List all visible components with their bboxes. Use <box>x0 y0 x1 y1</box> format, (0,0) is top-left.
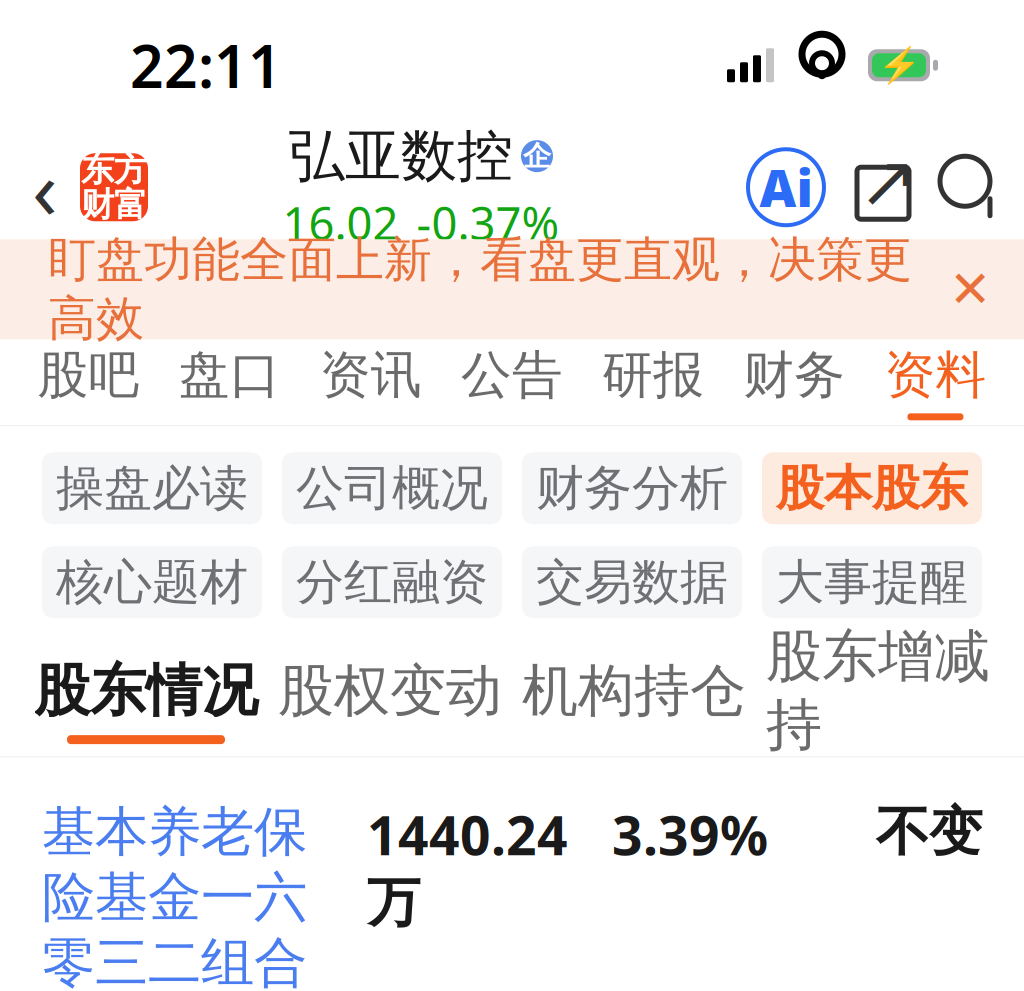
staticText: 不变 <box>876 799 982 865</box>
staticText: 核心题材 <box>56 553 248 612</box>
button[interactable]: 公告 <box>441 339 582 425</box>
button[interactable]: 公司概况 <box>282 452 502 524</box>
button[interactable]: 股权变动 <box>268 644 512 756</box>
staticText: 股吧 <box>38 344 140 406</box>
staticText: ↗ <box>858 140 918 222</box>
button[interactable]: 机构持仓 <box>512 644 756 756</box>
button[interactable]: 财务分析 <box>522 452 742 524</box>
staticText: 东方 <box>81 149 147 190</box>
staticText: 1440.24万 <box>367 799 568 935</box>
button[interactable]: 研报 <box>583 339 724 425</box>
button[interactable]: 交易数据 <box>522 546 742 618</box>
button[interactable]: Back <box>18 144 72 230</box>
button[interactable]: 基本养老保险基金一六零三二组合 <box>0 757 1024 991</box>
staticText: 财务 <box>743 344 845 406</box>
button[interactable]: Share <box>844 147 922 227</box>
button[interactable]: 大事提醒 <box>762 546 982 618</box>
staticText: 盘口 <box>179 344 281 406</box>
button[interactable]: Search <box>934 147 1008 227</box>
staticText: 股本股东 <box>776 459 968 518</box>
button[interactable]: 核心题材 <box>42 546 262 618</box>
button[interactable]: 盘口 <box>159 339 300 425</box>
staticText: 股东增减持 <box>766 622 990 760</box>
staticText: 公司概况 <box>296 459 488 518</box>
staticText: 研报 <box>602 344 704 406</box>
button[interactable]: 股吧 <box>18 339 159 425</box>
button[interactable]: 操盘必读 <box>42 452 262 524</box>
staticText: ✕ <box>949 260 991 318</box>
button[interactable]: AI assistant <box>748 149 824 225</box>
staticText: 财富 <box>81 184 147 225</box>
button[interactable]: 股东增减持 <box>756 644 1000 756</box>
staticText: 股权变动 <box>278 656 502 725</box>
button[interactable]: Close banner <box>938 257 1002 321</box>
button[interactable]: 分红融资 <box>282 546 502 618</box>
staticText: 资讯 <box>320 344 422 406</box>
staticText: 22:11 <box>130 26 282 104</box>
staticText: 股东情况 <box>34 656 258 725</box>
staticText: 企 <box>523 139 551 173</box>
staticText: 3.39% <box>612 799 768 870</box>
button[interactable]: 股东情况 <box>24 644 268 756</box>
staticText: 资料 <box>884 344 986 406</box>
button[interactable]: 股本股东 <box>762 452 982 524</box>
button[interactable]: 资讯 <box>300 339 441 425</box>
staticText: 大事提醒 <box>776 553 968 612</box>
staticText: ⚡ <box>877 45 920 85</box>
staticText: 弘亚数控 <box>289 122 513 190</box>
staticText: -0.37% <box>416 192 559 253</box>
staticText: Ai <box>759 154 812 221</box>
staticText: 操盘必读 <box>56 459 248 518</box>
staticText: 公告 <box>461 344 563 406</box>
button[interactable]: 东方财富 <box>80 153 148 221</box>
staticText: 基本养老保险基金一六零三二组合 <box>42 799 307 991</box>
staticText: 交易数据 <box>536 553 728 612</box>
button[interactable]: 资料 <box>865 339 1006 425</box>
staticText: 16.02 <box>282 192 398 253</box>
staticText: 盯盘功能全面上新，看盘更直观，决策更高效 <box>48 230 912 348</box>
staticText: 财务分析 <box>536 459 728 518</box>
staticText: ‹ <box>32 132 58 242</box>
staticText: 分红融资 <box>296 553 488 612</box>
button[interactable]: 财务 <box>724 339 865 425</box>
staticText: 机构持仓 <box>522 656 746 725</box>
